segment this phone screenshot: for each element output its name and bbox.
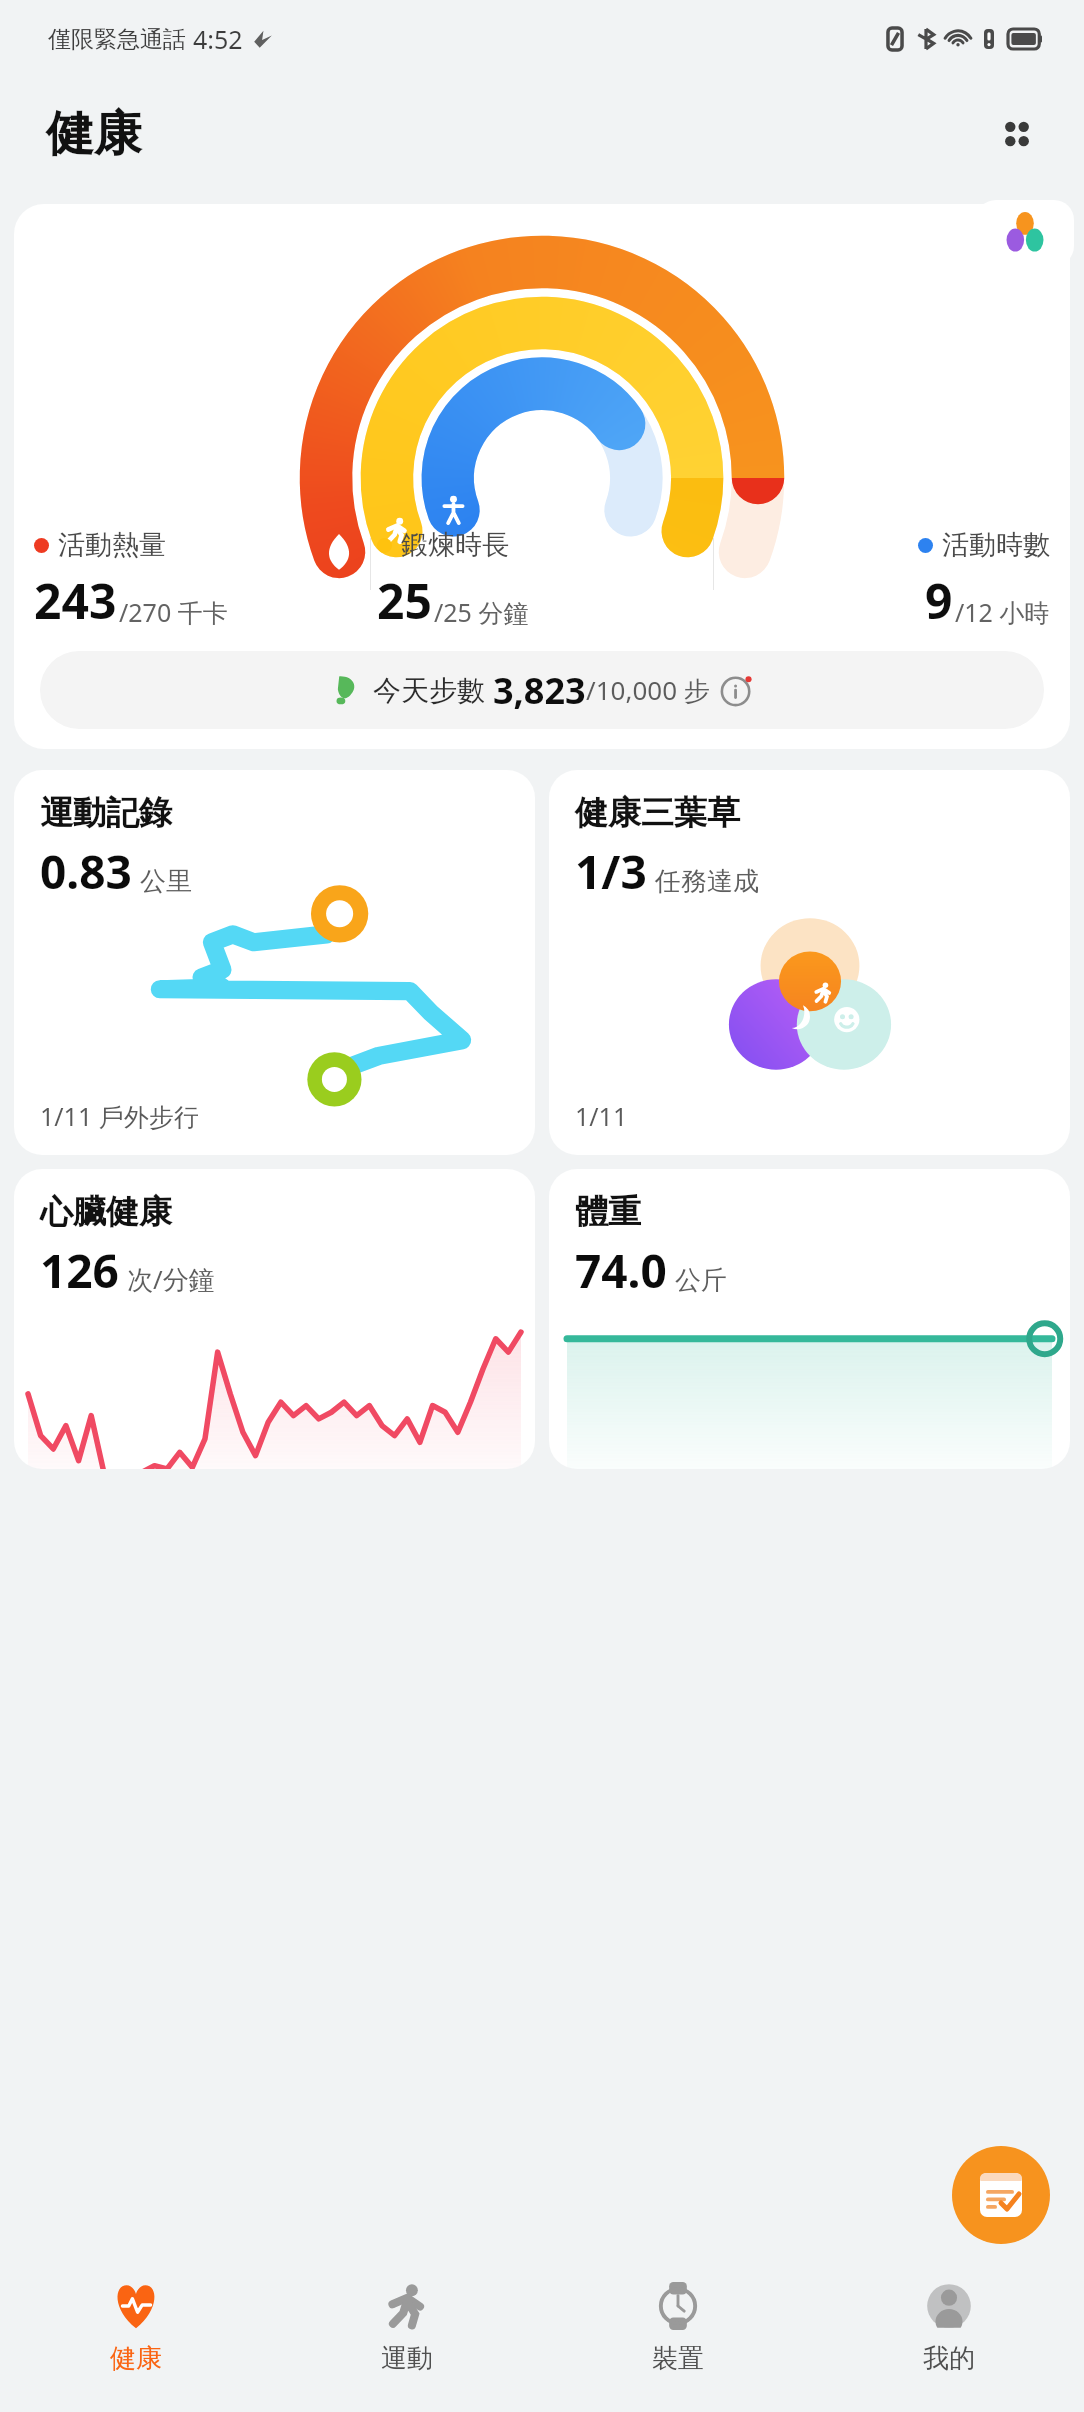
staticText: 裝置 <box>652 2342 704 2375</box>
staticText: 次/分鐘 <box>127 1261 215 1297</box>
staticText: 我的 <box>923 2342 975 2375</box>
button[interactable]: 健康 <box>0 2260 271 2412</box>
staticText: 健康三葉草 <box>575 792 740 834</box>
button[interactable]: 鍛煉時長 <box>371 528 713 633</box>
staticText: 運動 <box>381 2342 433 2375</box>
staticText: 126 <box>40 1239 119 1302</box>
staticText: 體重 <box>575 1191 641 1233</box>
staticText: 心臟健康 <box>40 1191 172 1233</box>
staticText: 公里 <box>140 865 192 898</box>
staticText: 運動記錄 <box>40 792 172 834</box>
staticText: 活動時數 <box>942 528 1050 562</box>
staticText: 鍛煉時長 <box>401 528 509 562</box>
button[interactable]: More options <box>986 103 1048 165</box>
button[interactable]: 我的 <box>813 2260 1084 2412</box>
staticText: 僅限緊急通話 <box>48 25 186 54</box>
button[interactable]: 裝置 <box>542 2260 813 2412</box>
staticText: /270 千卡 <box>119 595 228 629</box>
staticText: 健康 <box>110 2342 162 2375</box>
staticText: /12 小時 <box>955 595 1050 629</box>
staticText: /25 分鐘 <box>434 595 529 629</box>
staticText: 活動熱量 <box>58 528 166 562</box>
button[interactable]: 活動熱量 <box>28 528 370 633</box>
staticText: /10,000 步 <box>586 672 710 708</box>
staticText: 今天步數 <box>373 673 485 708</box>
button[interactable]: 運動記錄 <box>14 770 535 1155</box>
staticText: 任務達成 <box>655 865 759 898</box>
staticText: 1/11 戶外步行 <box>40 1099 199 1133</box>
staticText: 3,823 <box>493 666 586 715</box>
button[interactable]: 心臟健康 <box>14 1169 535 1469</box>
button[interactable]: Add record <box>952 2146 1050 2244</box>
button[interactable]: 健康三葉草 <box>549 770 1070 1155</box>
staticText: 25 <box>377 568 432 633</box>
staticText: 4:52 <box>193 22 243 56</box>
staticText: 243 <box>34 568 117 633</box>
staticText: 健康 <box>46 104 142 164</box>
button[interactable]: Steps info <box>719 672 755 708</box>
staticText: 公斤 <box>675 1264 727 1297</box>
button[interactable]: 活動熱量 <box>14 204 1070 749</box>
staticText: 1/11 <box>575 1099 628 1133</box>
button[interactable]: 運動 <box>271 2260 542 2412</box>
button[interactable]: 體重 <box>549 1169 1070 1469</box>
staticText: 9 <box>925 568 953 633</box>
staticText: 74.0 <box>575 1239 667 1302</box>
staticText: 1/3 <box>575 840 647 903</box>
staticText: 0.83 <box>40 840 132 903</box>
button[interactable]: 今天步數 <box>40 651 1044 729</box>
button[interactable]: Health clover <box>976 200 1074 266</box>
button[interactable]: 活動時數 <box>714 528 1056 633</box>
